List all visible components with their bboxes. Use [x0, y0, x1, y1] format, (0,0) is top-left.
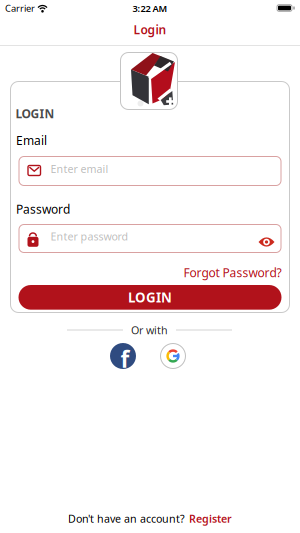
button[interactable]: Enter password: [18, 224, 281, 253]
button[interactable]: Enter email: [18, 156, 281, 186]
button[interactable]: [160, 343, 186, 369]
staticText: Enter email: [50, 162, 108, 176]
staticText: LOGIN: [128, 288, 172, 306]
button[interactable]: f: [110, 343, 136, 369]
staticText: Don't have an account?: [68, 511, 185, 526]
staticText: Login: [133, 22, 166, 37]
staticText: Register: [189, 511, 232, 526]
staticText: Password: [16, 201, 70, 217]
staticText: Forgot Password?: [183, 265, 281, 280]
staticText: Or with: [131, 323, 168, 337]
button[interactable]: Register: [189, 511, 232, 526]
button[interactable]: Forgot Password?: [183, 265, 281, 280]
staticText: Enter password: [50, 229, 128, 243]
staticText: f: [120, 344, 129, 374]
staticText: LOGIN: [15, 106, 54, 122]
staticText: Email: [16, 132, 47, 148]
button[interactable]: LOGIN: [18, 285, 281, 310]
staticText: 3:22 AM: [132, 2, 167, 14]
staticText: Carrier: [5, 2, 35, 14]
